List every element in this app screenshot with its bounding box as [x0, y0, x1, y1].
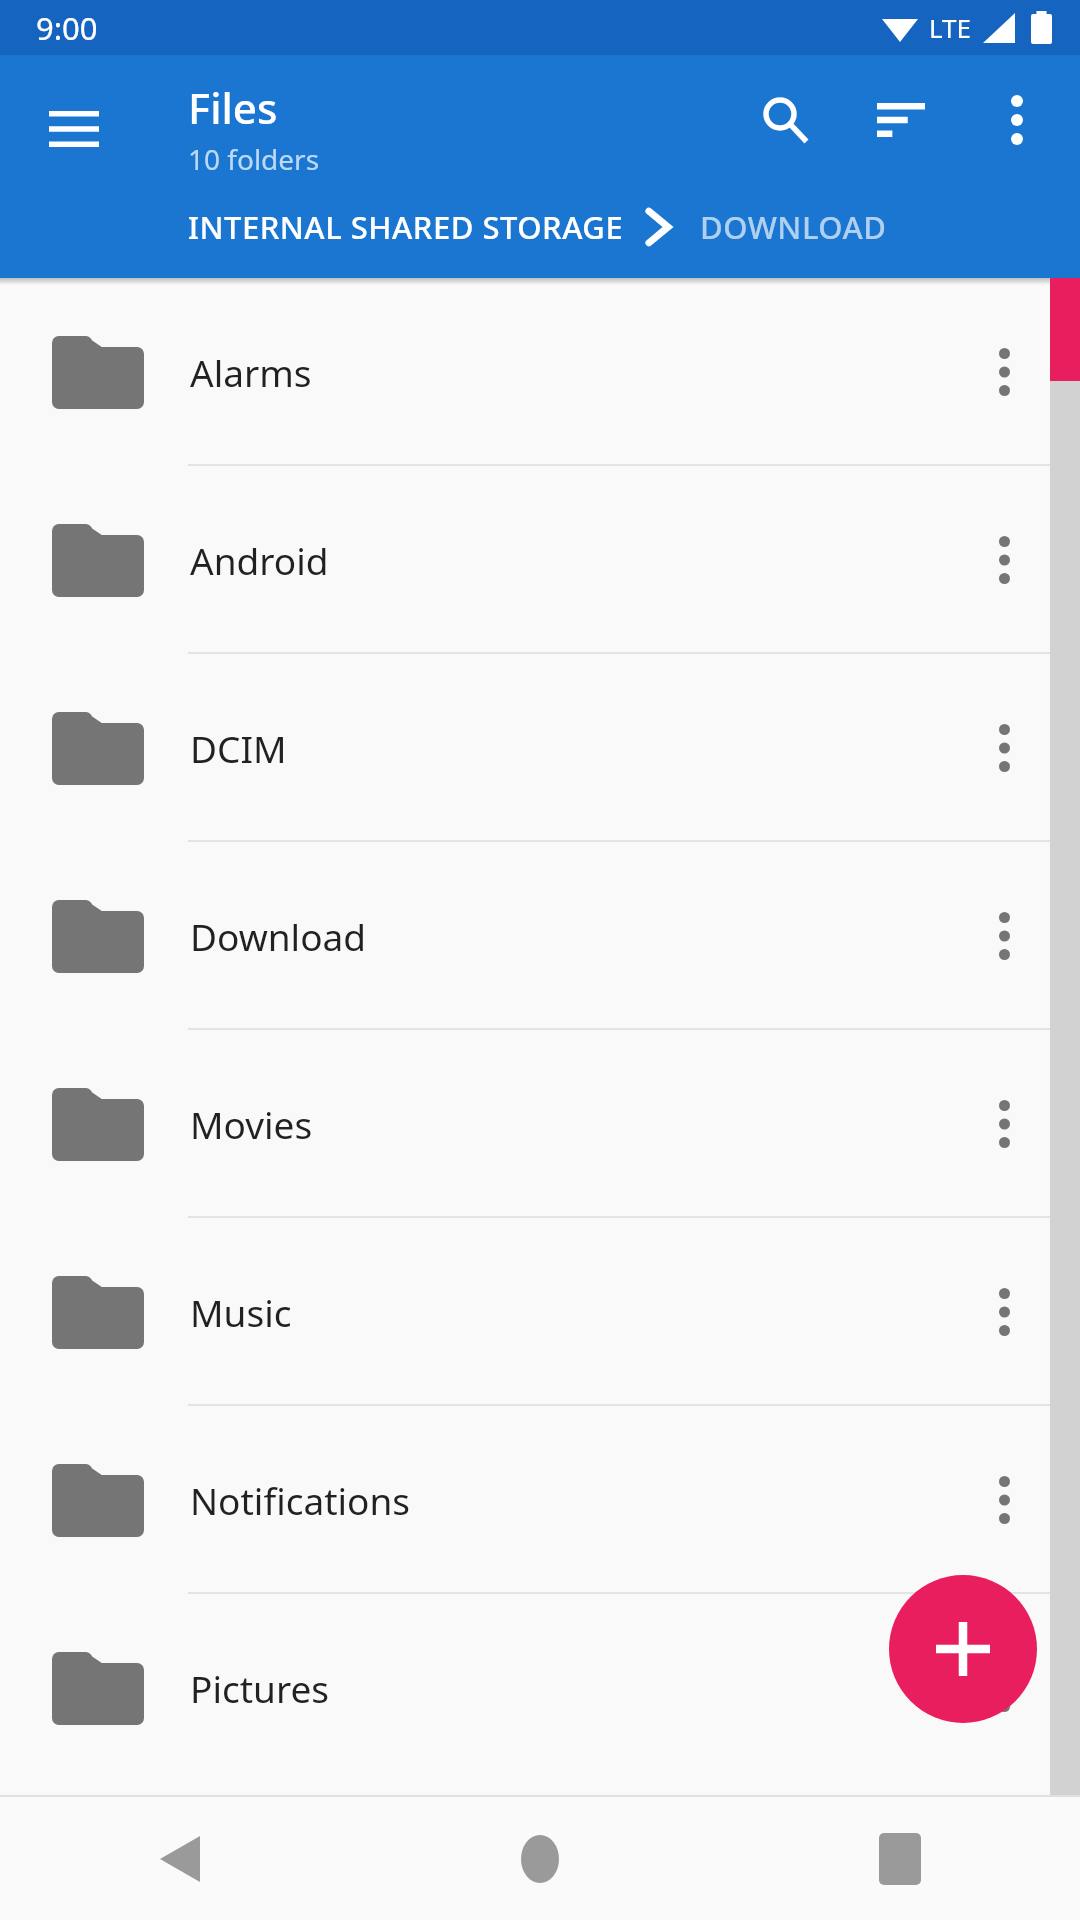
staticText: INTERNAL SHARED STORAGE	[188, 206, 624, 248]
staticText: Alarms	[190, 347, 954, 397]
staticText: Notifications	[190, 1475, 954, 1525]
button[interactable]: Home	[360, 1797, 720, 1920]
button[interactable]: More options for Pictures	[954, 1623, 1054, 1753]
button[interactable]: Android	[0, 466, 1080, 654]
button[interactable]: Open navigation drawer	[28, 83, 120, 175]
button[interactable]: DCIM	[0, 654, 1080, 842]
button[interactable]: Alarms	[0, 278, 1080, 466]
button[interactable]: Music	[0, 1218, 1080, 1406]
staticText: 10 folders	[188, 140, 320, 178]
staticText: Files	[188, 79, 278, 136]
button[interactable]: DOWNLOAD	[700, 206, 887, 248]
staticText: Movies	[190, 1099, 954, 1149]
button[interactable]: More options for DCIM	[954, 683, 1054, 813]
staticText: Android	[190, 535, 954, 585]
button[interactable]: Notifications	[0, 1406, 1080, 1594]
button[interactable]: Recent apps	[720, 1797, 1080, 1920]
button[interactable]: Download	[0, 842, 1080, 1030]
button[interactable]: Movies	[0, 1030, 1080, 1218]
button[interactable]: Create new	[889, 1575, 1037, 1723]
staticText: LTE	[929, 10, 972, 45]
button[interactable]: Pictures	[0, 1594, 1080, 1782]
button[interactable]: More options for Alarms	[954, 307, 1054, 437]
staticText: DOWNLOAD	[700, 206, 887, 248]
button[interactable]: More options for Notifications	[954, 1435, 1054, 1565]
button[interactable]: More options for Music	[954, 1247, 1054, 1377]
button[interactable]: Sort	[856, 75, 946, 165]
button[interactable]: More options for Android	[954, 495, 1054, 625]
staticText: Music	[190, 1287, 954, 1337]
staticText: DCIM	[190, 723, 954, 773]
button[interactable]: Search	[740, 75, 830, 165]
button[interactable]: INTERNAL SHARED STORAGE	[188, 206, 624, 248]
staticText: Download	[190, 911, 954, 961]
staticText: 9:00	[36, 7, 98, 49]
button[interactable]: Back	[0, 1797, 360, 1920]
staticText: Pictures	[190, 1663, 954, 1713]
button[interactable]: More options	[972, 75, 1062, 165]
button[interactable]: More options for Movies	[954, 1059, 1054, 1189]
button[interactable]: More options for Download	[954, 871, 1054, 1001]
